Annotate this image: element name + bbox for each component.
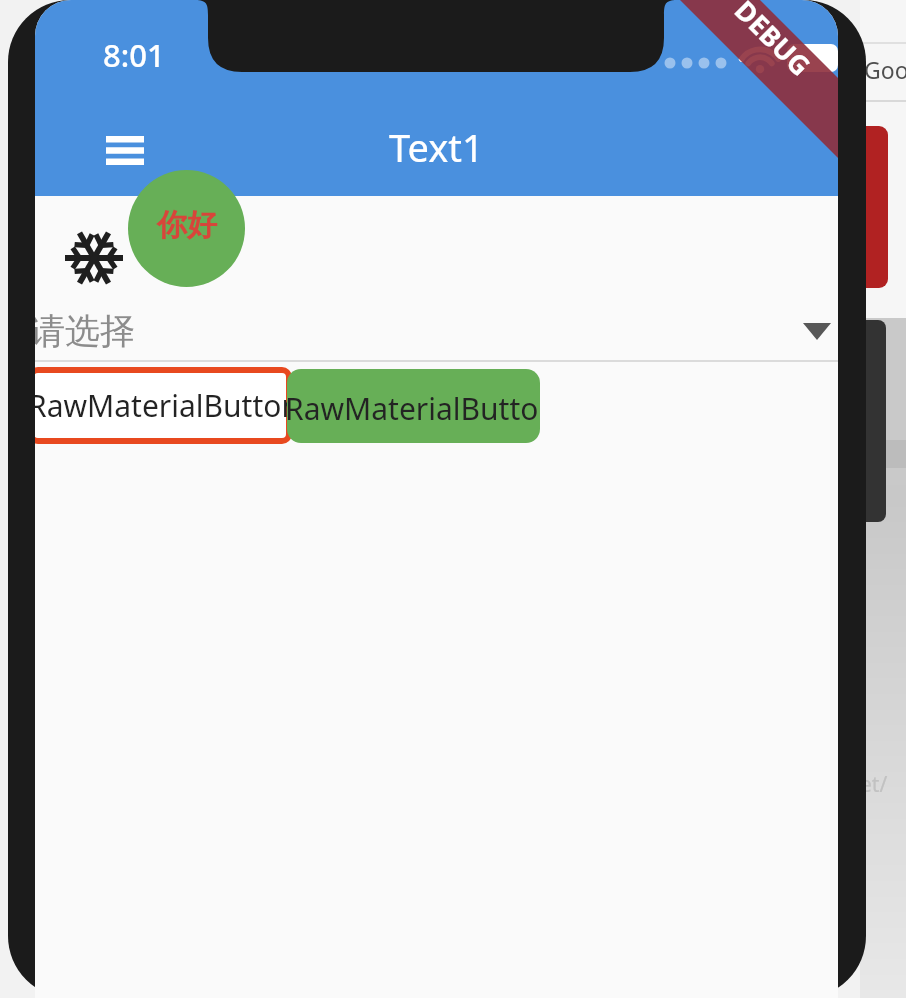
button[interactable]: 请选择: [35, 302, 838, 360]
staticText: Text1: [389, 121, 484, 173]
button[interactable]: RawMaterialButton: [287, 369, 540, 443]
staticText: 8:01: [103, 34, 165, 76]
staticText: et/: [860, 770, 888, 799]
staticText: DEBUG: [727, 0, 819, 84]
button[interactable]: 你好: [128, 170, 245, 287]
staticText: RawMaterialButton: [35, 385, 292, 426]
button[interactable]: Snowflake: [57, 221, 131, 295]
staticText: Goo: [864, 54, 906, 85]
staticText: RawMaterialButton: [287, 388, 538, 429]
button[interactable]: RawMaterialButton: [35, 367, 292, 444]
button[interactable]: Open navigation menu: [77, 112, 173, 188]
staticText: 你好: [157, 206, 217, 244]
staticText: 请选择: [35, 309, 135, 353]
